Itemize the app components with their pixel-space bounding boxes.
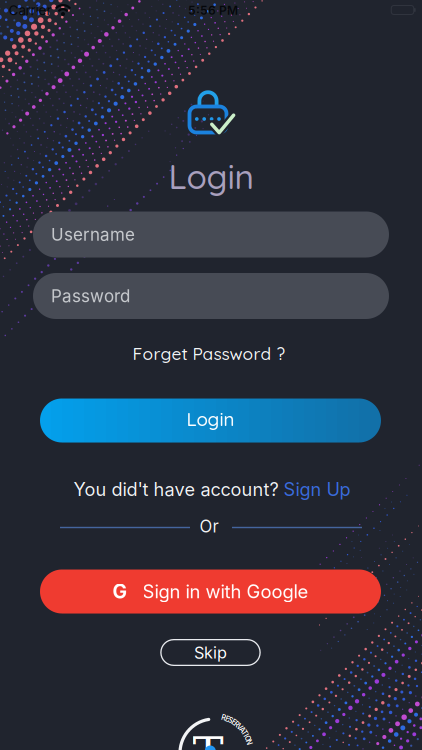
staticText: Password <box>51 286 130 306</box>
staticText: I <box>245 731 247 740</box>
button[interactable]: Skip <box>160 639 261 666</box>
staticText: Or <box>199 516 218 537</box>
staticText: O <box>245 734 250 743</box>
staticText: 5:56 PM <box>188 3 238 18</box>
staticText: Skip <box>194 643 227 662</box>
staticText: A <box>240 726 245 734</box>
staticText: T <box>242 729 247 737</box>
staticText: Sign Up <box>283 478 350 500</box>
staticText: You did't have account? <box>73 478 278 500</box>
staticText: Username <box>51 224 135 245</box>
staticText: E <box>232 718 236 726</box>
button[interactable]: Login <box>40 398 381 442</box>
button[interactable]: Username <box>33 211 389 257</box>
staticText: Carrier <box>8 2 51 18</box>
staticText: Login <box>168 156 253 197</box>
staticText: Forget Password ? <box>132 343 285 364</box>
staticText: R <box>234 720 239 729</box>
button[interactable]: G <box>40 569 381 613</box>
staticText: V <box>237 723 242 731</box>
staticText: E <box>225 715 229 723</box>
button[interactable]: Forget Password ? <box>132 343 285 364</box>
staticText: Sign in with Google <box>142 580 308 603</box>
staticText: N <box>246 738 251 746</box>
staticText: T <box>192 727 223 750</box>
staticText: S <box>228 716 233 725</box>
button[interactable]: Sign Up <box>283 478 350 500</box>
button[interactable]: Password <box>33 273 389 319</box>
staticText: Login <box>186 407 234 431</box>
staticText: R <box>221 714 226 722</box>
staticText: G <box>112 580 127 603</box>
